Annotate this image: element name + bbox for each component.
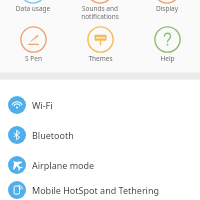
- button[interactable]: S Pen: [0, 26, 66, 64]
- staticText: Bluetooth: [32, 129, 74, 141]
- staticText: Airplane mode: [32, 159, 95, 171]
- button[interactable]: Airplane mode: [0, 150, 200, 180]
- staticText: Help: [160, 54, 175, 63]
- button[interactable]: Sounds and notifications: [67, 0, 133, 21]
- button[interactable]: Themes: [67, 26, 133, 64]
- button[interactable]: Help: [134, 26, 200, 64]
- button[interactable]: Mobile HotSpot and Tethering: [0, 180, 200, 200]
- staticText: Themes: [88, 54, 113, 63]
- staticText: Mobile HotSpot and Tethering: [32, 184, 160, 196]
- staticText: Display: [134, 4, 200, 13]
- button[interactable]: Display: [134, 0, 200, 13]
- button[interactable]: Data usage: [0, 0, 66, 13]
- staticText: Wi-Fi: [32, 99, 53, 111]
- button[interactable]: Bluetooth: [0, 120, 200, 150]
- staticText: S Pen: [25, 54, 42, 63]
- button[interactable]: Wi-Fi: [0, 90, 200, 120]
- staticText: Data usage: [0, 4, 66, 13]
- staticText: Sounds and notifications: [67, 4, 133, 21]
